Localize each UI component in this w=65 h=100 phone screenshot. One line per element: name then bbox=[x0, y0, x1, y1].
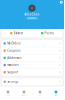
button[interactable]: Mine bbox=[48, 86, 64, 100]
button[interactable]: Home bbox=[0, 86, 16, 100]
button[interactable]: Settings bbox=[59, 0, 64, 5]
staticText: My Orders bbox=[7, 42, 20, 45]
staticText: Points bbox=[44, 31, 53, 35]
button[interactable]: Points bbox=[32, 29, 62, 37]
button[interactable]: Balance bbox=[2, 29, 32, 37]
staticText: Support bbox=[7, 70, 18, 74]
staticText: Favorites bbox=[7, 63, 18, 67]
staticText: VIP Member bbox=[28, 17, 36, 19]
button[interactable]: Category bbox=[16, 86, 32, 100]
button[interactable]: Support bbox=[2, 69, 62, 76]
button[interactable]: Addresses bbox=[2, 54, 62, 61]
button[interactable]: Favorites bbox=[2, 62, 62, 68]
staticText: Alex Chen bbox=[24, 13, 39, 16]
staticText: Category bbox=[20, 94, 27, 96]
button[interactable]: My Orders bbox=[2, 40, 62, 47]
button[interactable]: Coupons bbox=[2, 47, 62, 54]
staticText: Home bbox=[6, 94, 10, 96]
staticText: Coupons bbox=[7, 49, 20, 52]
staticText: Settings bbox=[7, 80, 18, 83]
staticText: Addresses bbox=[7, 56, 21, 60]
staticText: Balance bbox=[14, 31, 24, 35]
staticText: Cart bbox=[38, 94, 41, 96]
button[interactable]: Cart bbox=[32, 86, 48, 100]
staticText: Mine bbox=[54, 94, 57, 96]
button[interactable]: Settings bbox=[2, 78, 62, 85]
